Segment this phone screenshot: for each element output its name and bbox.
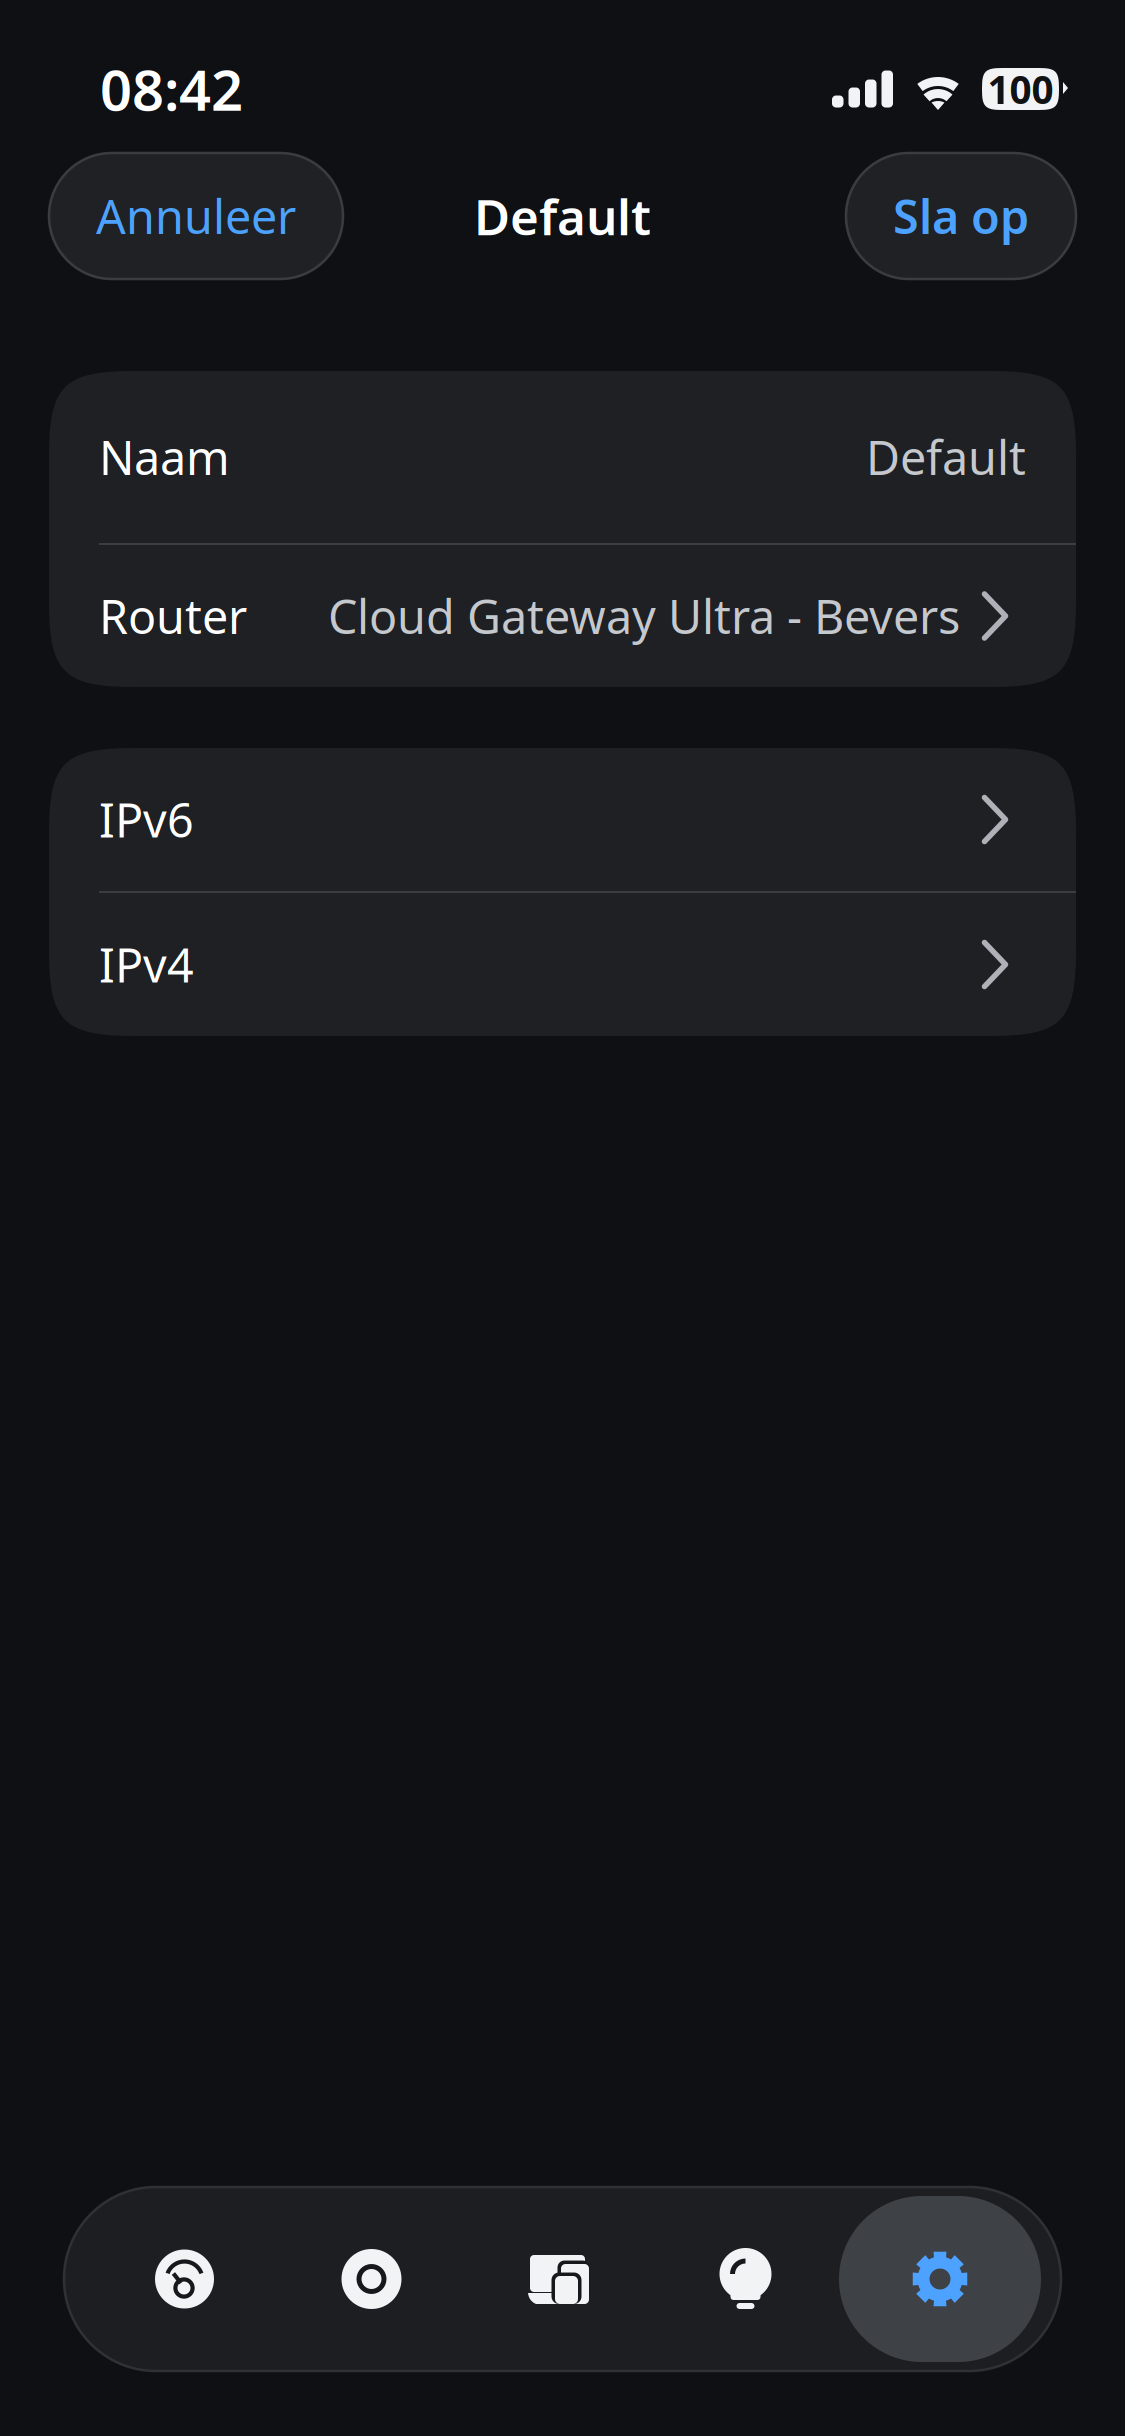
button[interactable]: Annuleer (49, 153, 343, 279)
staticText: Default (866, 426, 1026, 488)
staticText: 08:42 (100, 52, 243, 126)
button[interactable]: Sla op (846, 153, 1076, 279)
button[interactable]: Overview (91, 2187, 278, 2371)
button[interactable]: Router (49, 545, 1076, 687)
staticText: Naam (99, 426, 230, 488)
staticText: IPv6 (99, 788, 194, 850)
button[interactable]: Insights (652, 2187, 839, 2371)
staticText: Router (99, 585, 247, 647)
staticText: Default (474, 183, 651, 249)
button[interactable]: Settings (839, 2196, 1050, 2362)
staticText: Annuleer (96, 185, 296, 247)
staticText: Cloud Gateway Ultra - Bevers (328, 585, 960, 647)
button[interactable]: IPv4 (49, 893, 1076, 1036)
button[interactable]: Network (278, 2187, 465, 2371)
staticText: 100 (987, 63, 1053, 115)
staticText: Sla op (893, 185, 1029, 247)
button[interactable]: Devices (465, 2187, 652, 2371)
staticText: IPv4 (99, 933, 194, 995)
button[interactable]: IPv6 (49, 748, 1076, 891)
